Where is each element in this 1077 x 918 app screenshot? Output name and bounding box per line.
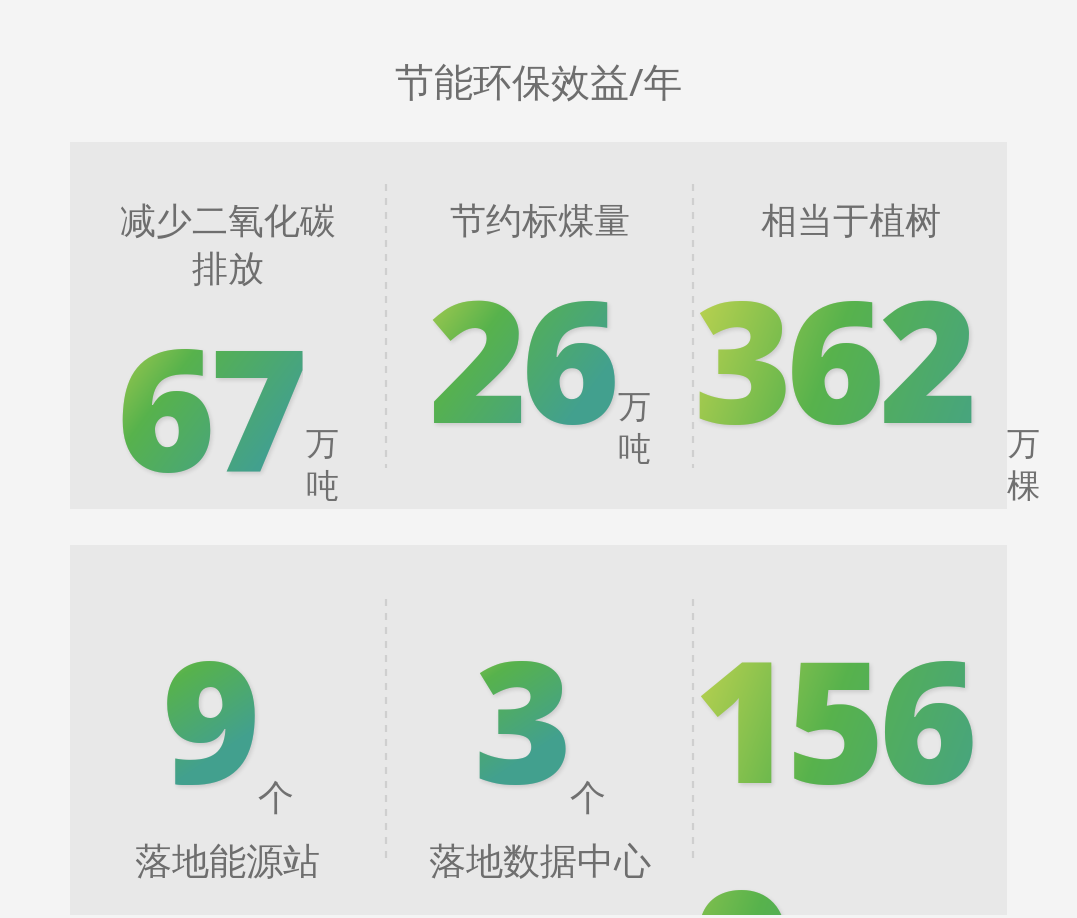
staticText: 个 xyxy=(258,775,294,820)
button[interactable]: 节能环保效益/年 xyxy=(383,52,695,109)
button[interactable]: 供能面积万m² xyxy=(694,545,1007,915)
staticText: 3 xyxy=(474,603,567,832)
staticText: 节约标煤量 xyxy=(450,198,630,243)
button[interactable]: 减少二氧化碳排放 xyxy=(70,142,1007,509)
button[interactable]: 落地能源站 xyxy=(70,545,385,915)
staticText: 节能环保效益/年 xyxy=(395,54,683,107)
staticText: 26 xyxy=(429,243,615,472)
button[interactable]: 落地能源站 xyxy=(70,545,1007,915)
staticText: 67 xyxy=(117,291,303,509)
button[interactable]: 相当于植树 xyxy=(694,142,1007,509)
button[interactable]: 落地数据中心 xyxy=(387,545,692,915)
staticText: 吨 xyxy=(306,465,339,507)
staticText: 3629 xyxy=(694,243,1007,509)
staticText: 落地数据中心 xyxy=(429,838,651,885)
staticText: 1569 xyxy=(694,603,1007,915)
staticText: 落地能源站 xyxy=(135,838,320,885)
staticText: 个 xyxy=(570,775,606,820)
button[interactable]: 节约标煤量 xyxy=(387,142,692,509)
staticText: 吨 xyxy=(618,428,651,470)
staticText: 9 xyxy=(162,603,255,832)
staticText: 减少二氧化碳 排放 xyxy=(120,198,336,291)
button[interactable]: 减少二氧化碳排放 xyxy=(70,142,385,509)
staticText: 万 xyxy=(618,386,651,428)
staticText: 相当于植树 xyxy=(761,198,941,243)
staticText: 万 xyxy=(306,423,339,465)
